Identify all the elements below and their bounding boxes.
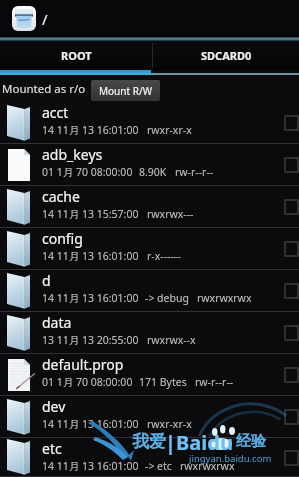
staticText: -> debug [145, 291, 189, 305]
staticText: 01 1月 70 08:00:00 [42, 375, 133, 389]
button[interactable]: File manager icon [12, 6, 36, 31]
staticText: rw-r--r-- [175, 165, 214, 179]
staticText: r-x------ [147, 249, 181, 263]
button[interactable]: d [0, 270, 299, 312]
staticText: rwxrwxrwx [197, 291, 252, 305]
staticText: 13 11月 13 20:55:00 [42, 333, 139, 347]
staticText: cache [42, 187, 80, 206]
button[interactable]: Select item [285, 284, 298, 298]
staticText: / [42, 9, 48, 29]
button[interactable]: data [0, 312, 299, 354]
button[interactable]: Mount R/W [91, 80, 160, 101]
staticText: d [42, 271, 51, 290]
button[interactable]: ROOT [0, 41, 152, 70]
staticText: rwxr-xr-x [147, 123, 192, 137]
staticText: acct [42, 103, 69, 122]
button[interactable]: Select item [285, 200, 298, 214]
staticText: adb_keys [42, 145, 103, 164]
staticText: config [42, 229, 83, 248]
button[interactable]: acct [0, 102, 299, 144]
staticText: jingyan.baidu.com [189, 452, 272, 465]
button[interactable]: adb_keys [0, 144, 299, 186]
staticText: rwxrwx--- [147, 207, 194, 221]
staticText: |Baidu [165, 429, 233, 456]
button[interactable]: Select item [285, 158, 298, 172]
button[interactable]: Select item [285, 116, 298, 130]
button[interactable]: config [0, 228, 299, 270]
staticText: 171 Bytes [139, 375, 187, 389]
button[interactable]: etc [0, 438, 299, 477]
staticText: 14 11月 13 15:57:00 [42, 207, 139, 221]
staticText: Mount R/W [99, 84, 152, 98]
staticText: rw-r--r-- [195, 375, 234, 389]
staticText: 14 11月 13 16:01:00 [42, 417, 139, 431]
staticText: data [42, 313, 72, 332]
staticText: 8.90K [139, 165, 167, 179]
staticText: 我爱 [132, 431, 166, 452]
staticText: Mounted as r/o [2, 81, 86, 97]
button[interactable]: cache [0, 186, 299, 228]
button[interactable]: default.prop [0, 354, 299, 396]
staticText: dev [42, 397, 66, 416]
staticText: rwxrwx--x [147, 333, 196, 347]
button[interactable]: dev [0, 396, 299, 438]
staticText: 经验 [236, 432, 266, 451]
staticText: 14 11月 13 16:01:00 [42, 291, 139, 305]
staticText: rwxrwxrwx [180, 459, 235, 473]
button[interactable]: Select item [285, 410, 298, 424]
staticText: -> etc [145, 459, 172, 473]
staticText: rwxr-xr-x [147, 417, 192, 431]
staticText: 14 11月 13 16:01:00 [42, 123, 139, 137]
staticText: SDCARD0 [201, 48, 252, 63]
staticText: etc [42, 439, 62, 458]
staticText: 14 11月 13 16:01:00 [42, 249, 139, 263]
button[interactable]: Select item [285, 451, 298, 465]
staticText: default.prop [42, 355, 124, 374]
button[interactable]: Select item [285, 326, 298, 340]
staticText: ROOT [61, 48, 92, 63]
button[interactable]: Select item [285, 368, 298, 382]
button[interactable]: Select item [285, 242, 298, 256]
staticText: 14 11月 13 16:01:00 [42, 459, 139, 473]
button[interactable]: SDCARD0 [153, 41, 299, 70]
staticText: 01 1月 70 08:00:00 [42, 165, 133, 179]
